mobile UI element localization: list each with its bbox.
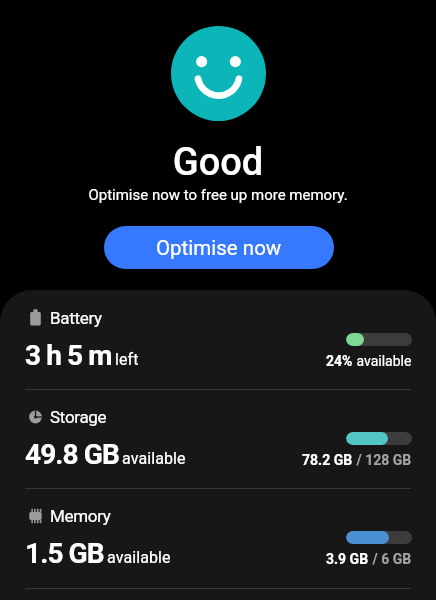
other: Device status: good bbox=[171, 26, 266, 121]
staticText: / 6 GB bbox=[369, 551, 412, 567]
button[interactable]: Battery bbox=[0, 290, 436, 389]
staticText: available bbox=[353, 353, 412, 369]
staticText: Battery bbox=[50, 308, 102, 328]
staticText: 1.5 GB bbox=[25, 537, 104, 570]
button[interactable]: Memory bbox=[0, 488, 436, 587]
button[interactable]: Storage bbox=[0, 389, 436, 488]
staticText: available bbox=[122, 449, 186, 468]
staticText: Optimise now to free up more memory. bbox=[0, 186, 436, 204]
button[interactable]: Optimise now bbox=[104, 226, 334, 269]
staticText: 49.8 GB bbox=[25, 438, 119, 471]
staticText: 24% bbox=[326, 353, 353, 369]
staticText: Optimise now bbox=[156, 236, 282, 260]
staticText: 3.9 GB bbox=[326, 551, 369, 567]
staticText: left bbox=[115, 350, 139, 369]
staticText: available bbox=[107, 548, 171, 567]
staticText: Memory bbox=[50, 506, 111, 526]
staticText: 3 h 5 m bbox=[25, 339, 112, 372]
staticText: Good bbox=[0, 140, 436, 185]
staticText: / 128 GB bbox=[353, 452, 412, 468]
staticText: Storage bbox=[50, 407, 107, 427]
staticText: 78.2 GB bbox=[302, 452, 353, 468]
